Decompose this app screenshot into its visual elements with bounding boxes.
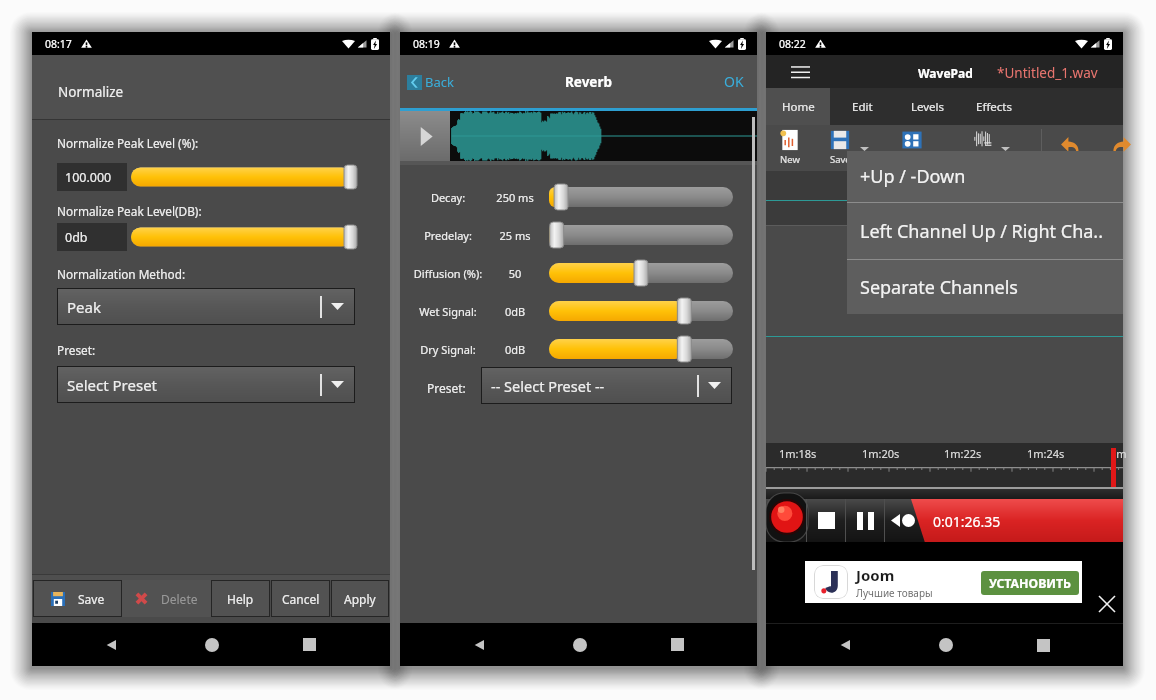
staticText: Reverb bbox=[565, 73, 612, 91]
staticText: Back bbox=[425, 73, 454, 91]
button[interactable]: Recent apps bbox=[264, 623, 354, 666]
staticText: Cancel bbox=[282, 591, 320, 607]
button[interactable]: Back bbox=[66, 623, 156, 666]
staticText: 0db bbox=[65, 229, 88, 246]
staticText: OK bbox=[724, 72, 744, 91]
button[interactable]: Rewind bbox=[885, 499, 921, 542]
staticText: New bbox=[780, 153, 800, 166]
staticText: Apply bbox=[344, 591, 376, 607]
staticText: Save bbox=[830, 153, 851, 166]
button[interactable]: Stop bbox=[807, 499, 845, 542]
staticText: +Up / -Down bbox=[860, 164, 966, 189]
button[interactable]: Back bbox=[400, 67, 460, 97]
staticText: Normalization Method: bbox=[57, 266, 186, 282]
staticText: 1m:18s bbox=[779, 446, 817, 461]
staticText: Delete bbox=[161, 591, 198, 607]
button[interactable]: OK bbox=[711, 66, 757, 97]
staticText: Preset: bbox=[427, 380, 466, 396]
button[interactable]: Tool bbox=[888, 125, 936, 171]
button[interactable]: 100.000 bbox=[57, 163, 127, 191]
button[interactable]: Play bbox=[400, 111, 450, 161]
button[interactable]: Home bbox=[535, 623, 625, 666]
staticText: 1m:20s bbox=[862, 446, 900, 461]
staticText: Joom bbox=[856, 565, 895, 585]
button[interactable]: Record bbox=[767, 497, 807, 537]
button[interactable]: Levels bbox=[895, 88, 960, 125]
staticText: Wet Signal: bbox=[400, 304, 496, 319]
staticText: 250 ms bbox=[490, 190, 540, 205]
button[interactable]: Recent apps bbox=[632, 623, 722, 666]
staticText: Left Channel Up / Right Cha.. bbox=[860, 219, 1104, 244]
staticText: 1m:22s bbox=[944, 446, 982, 461]
staticText: Decay: bbox=[400, 190, 496, 205]
staticText: 25 ms bbox=[490, 228, 540, 243]
staticText: Preset: bbox=[57, 342, 96, 358]
staticText: Peak bbox=[67, 297, 101, 317]
button[interactable]: Left Channel Up / Right Cha.. bbox=[847, 203, 1123, 259]
staticText: 08:22 bbox=[779, 37, 806, 51]
button[interactable]: Apply bbox=[331, 580, 389, 617]
staticText: Help bbox=[227, 591, 254, 607]
staticText: Normalize bbox=[58, 83, 124, 101]
button[interactable]: Back bbox=[434, 623, 524, 666]
staticText: Levels bbox=[911, 99, 945, 115]
button[interactable]: Menu bbox=[780, 55, 820, 88]
button[interactable]: Recent apps bbox=[998, 624, 1088, 666]
button[interactable]: Effects bbox=[960, 88, 1028, 125]
button[interactable]: Peak bbox=[57, 288, 355, 325]
button[interactable]: Help bbox=[211, 580, 270, 617]
staticText: 50 bbox=[490, 266, 540, 281]
button[interactable]: Undo bbox=[1054, 130, 1086, 162]
staticText: 08:17 bbox=[45, 37, 72, 51]
button[interactable]: УСТАНОВИТЬ bbox=[981, 571, 1079, 595]
staticText: 0dB bbox=[490, 342, 540, 357]
staticText: 0:01:26.35 bbox=[933, 512, 1001, 531]
button[interactable]: Select Preset bbox=[57, 366, 355, 403]
staticText: 08:19 bbox=[413, 37, 440, 51]
button[interactable]: Save bbox=[33, 580, 122, 617]
staticText: Select Preset bbox=[67, 375, 158, 395]
staticText: 1m:24s bbox=[1027, 446, 1065, 461]
button[interactable]: Edit bbox=[830, 88, 895, 125]
button[interactable]: 0db bbox=[57, 223, 127, 251]
staticText: Normalize Peak Level(DB): bbox=[57, 203, 202, 219]
staticText: Лучшие товары bbox=[856, 586, 933, 600]
button[interactable]: Tool bbox=[959, 125, 1007, 171]
staticText: 0dB bbox=[490, 304, 540, 319]
staticText: Effects bbox=[976, 99, 1012, 115]
staticText: 1m bbox=[1110, 446, 1127, 461]
button[interactable]: Home bbox=[167, 623, 257, 666]
button[interactable]: -- Select Preset -- bbox=[481, 367, 732, 404]
staticText: Separate Channels bbox=[860, 275, 1018, 300]
button[interactable]: Save bbox=[816, 125, 864, 171]
button[interactable]: Close ad bbox=[1093, 590, 1121, 618]
staticText: Dry Signal: bbox=[400, 342, 496, 357]
staticText: Diffusion (%): bbox=[400, 266, 496, 281]
button[interactable]: Home bbox=[766, 88, 830, 125]
button[interactable]: Redo bbox=[1106, 130, 1138, 162]
button[interactable]: Delete bbox=[122, 580, 211, 617]
button[interactable]: Separate Channels bbox=[847, 260, 1123, 314]
staticText: WavePad bbox=[918, 65, 973, 81]
staticText: Save bbox=[78, 591, 105, 607]
staticText: Predelay: bbox=[400, 228, 496, 243]
staticText: Home bbox=[782, 99, 815, 115]
button[interactable]: Pause bbox=[846, 499, 884, 542]
staticText: УСТАНОВИТЬ bbox=[989, 575, 1072, 592]
button[interactable]: Home bbox=[901, 624, 991, 666]
button[interactable]: +Up / -Down bbox=[847, 151, 1123, 202]
button[interactable]: Joom bbox=[805, 561, 1082, 603]
staticText: Edit bbox=[852, 99, 873, 115]
staticText: *Untitled_1.wav bbox=[997, 64, 1098, 82]
staticText: Normalize Peak Level (%): bbox=[57, 135, 199, 151]
button[interactable]: Back bbox=[800, 624, 890, 666]
button[interactable]: Cancel bbox=[271, 580, 330, 617]
button[interactable]: New bbox=[766, 125, 814, 171]
staticText: 100.000 bbox=[65, 169, 112, 186]
staticText: -- Select Preset -- bbox=[491, 376, 605, 396]
